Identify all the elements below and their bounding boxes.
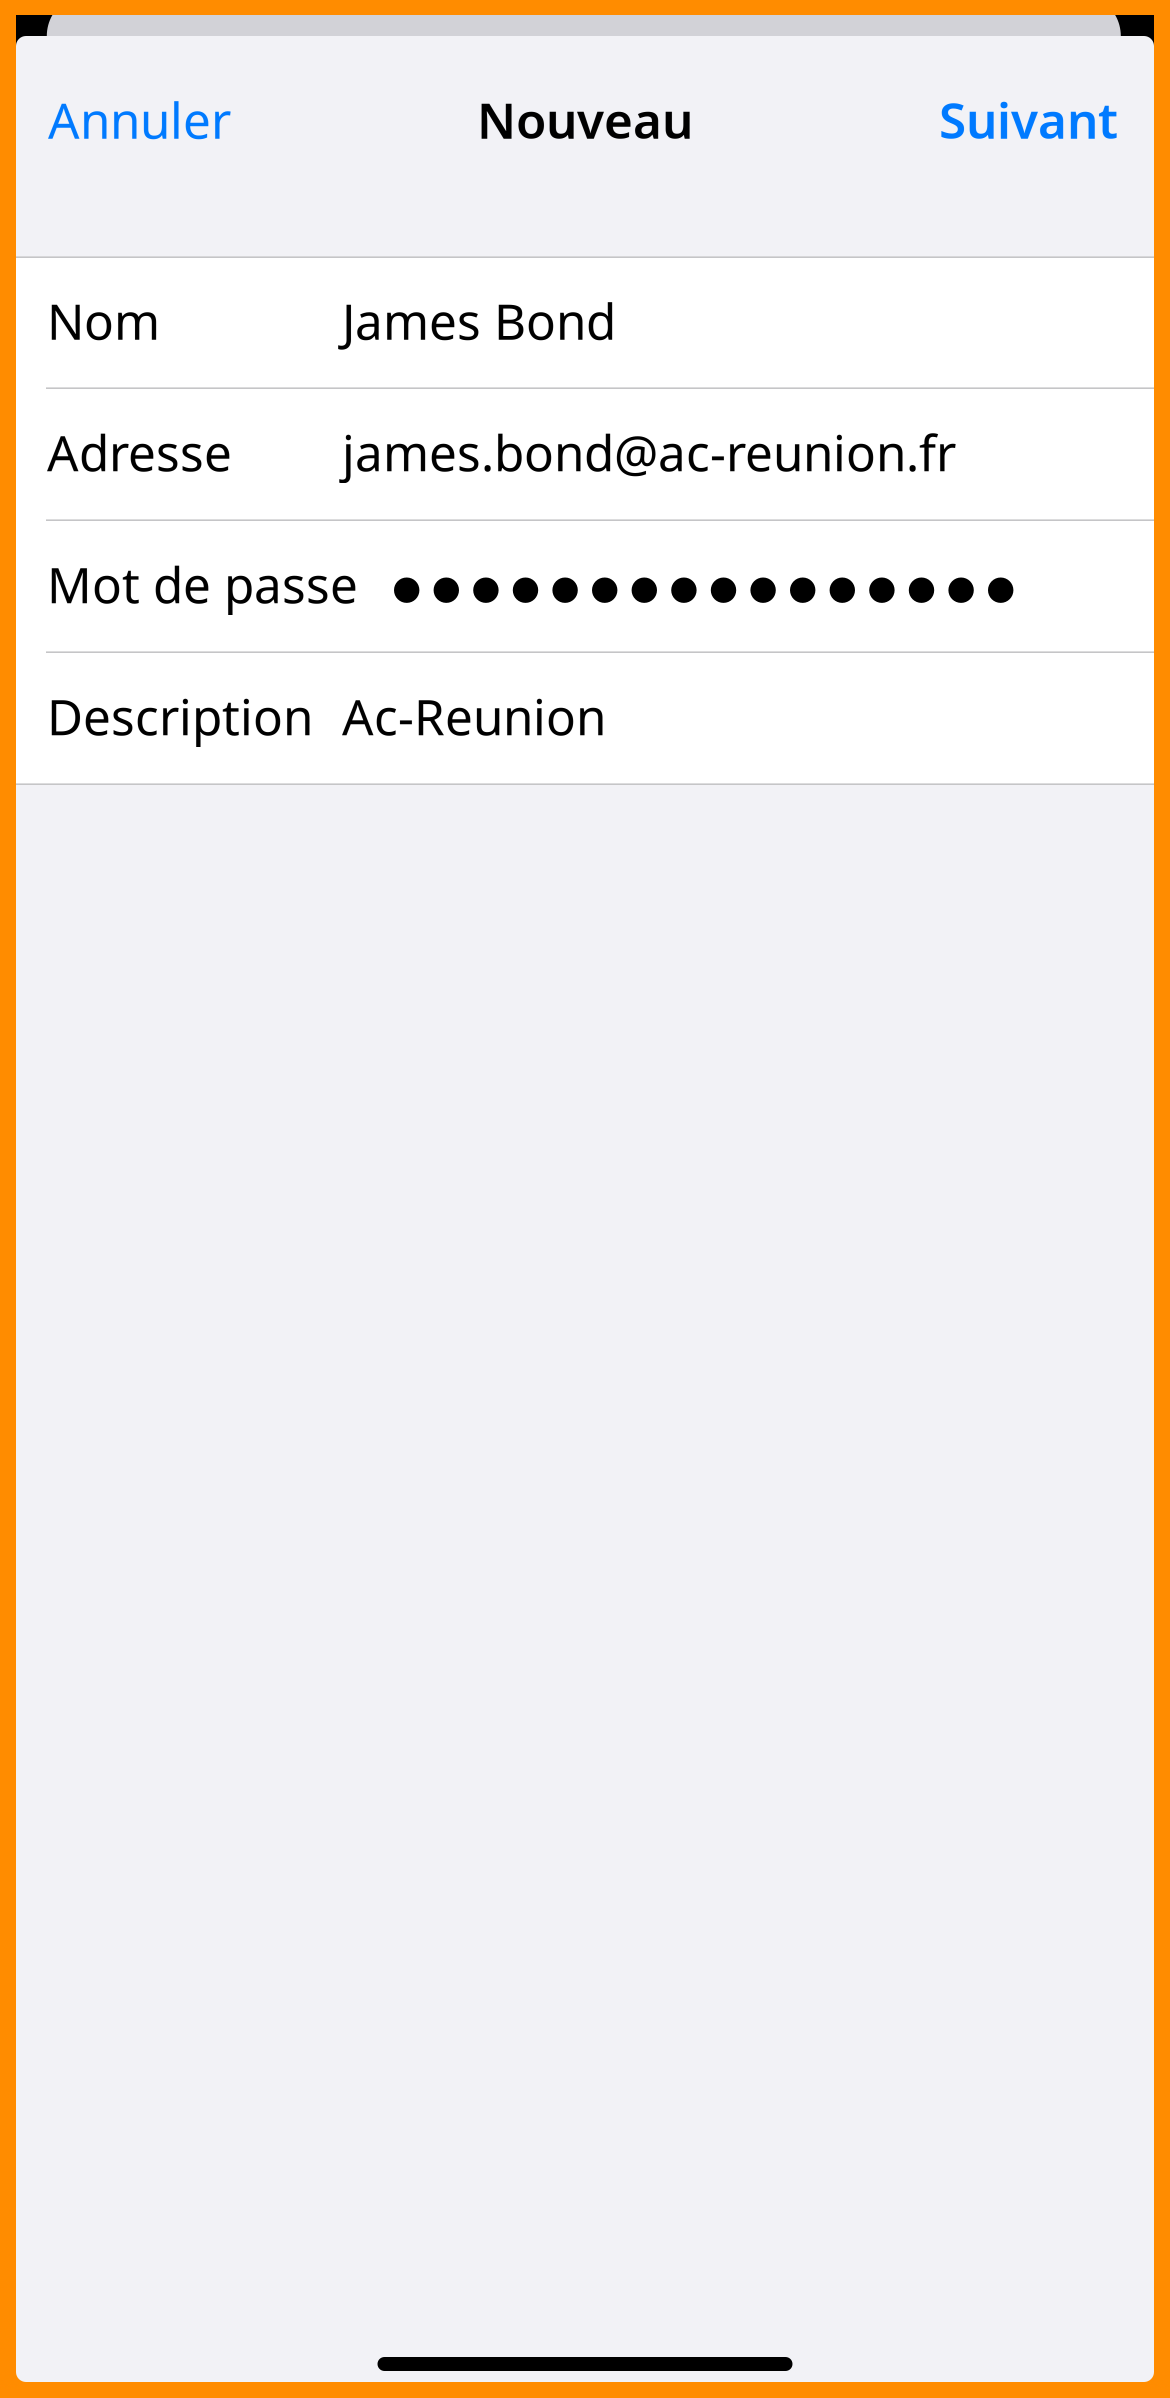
button[interactable]: Nom xyxy=(16,258,1154,389)
button[interactable]: Mot de passe xyxy=(16,521,1154,653)
staticText: Annuler xyxy=(48,87,231,152)
button[interactable]: Annuler xyxy=(42,63,237,176)
button[interactable]: Description xyxy=(16,653,1154,785)
staticText: James Bond xyxy=(342,288,616,353)
staticText: Nouveau xyxy=(477,87,693,152)
button[interactable]: Adresse xyxy=(16,389,1154,521)
staticText: james.bond@ac-reunion.fr xyxy=(342,419,956,485)
staticText: Adresse xyxy=(47,419,232,485)
staticText: Suivant xyxy=(939,87,1118,152)
staticText: Ac-Reunion xyxy=(342,683,606,749)
staticText: Nom xyxy=(47,288,160,353)
staticText: Mot de passe xyxy=(47,551,358,617)
button[interactable]: Suivant xyxy=(933,63,1124,176)
staticText: Description xyxy=(47,683,313,749)
